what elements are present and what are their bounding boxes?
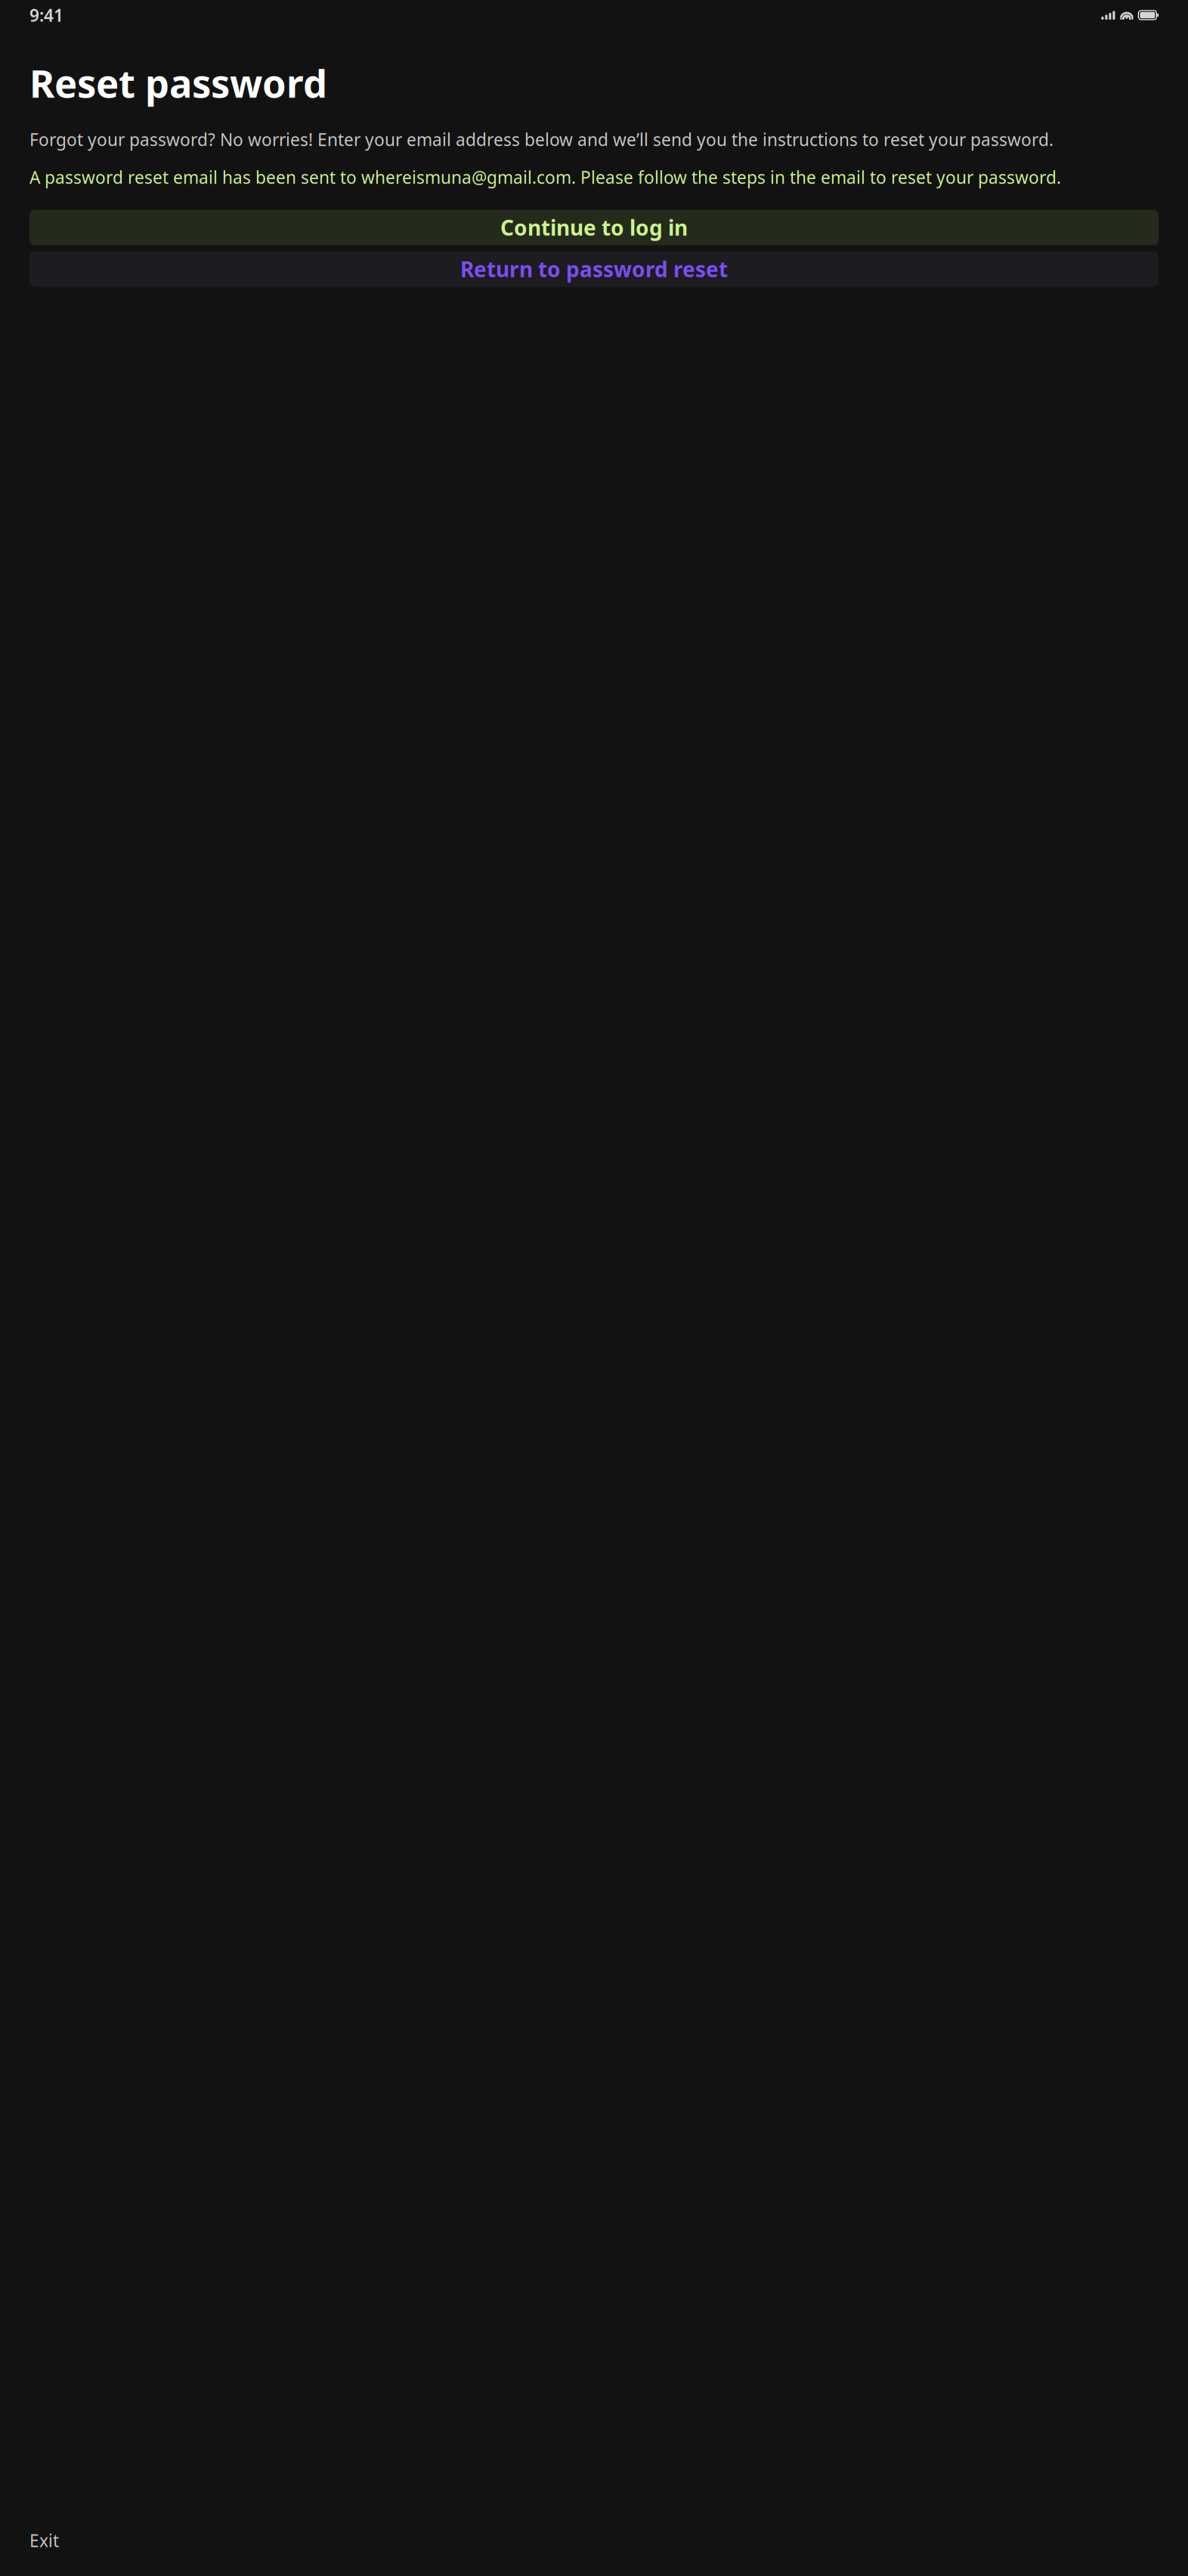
staticText: Return to password reset xyxy=(460,255,728,283)
staticText: Reset password xyxy=(29,57,327,108)
button[interactable]: Return to password reset xyxy=(29,251,1159,287)
staticText: 9:41 xyxy=(29,4,63,26)
staticText: A password reset email has been sent to … xyxy=(29,166,1061,189)
button[interactable]: Continue to log in xyxy=(29,210,1159,245)
staticText: Exit xyxy=(29,2529,59,2552)
staticText: Continue to log in xyxy=(500,213,688,242)
button[interactable]: Exit xyxy=(0,2523,88,2558)
staticText: Forgot your password? No worries! Enter … xyxy=(29,128,1053,151)
